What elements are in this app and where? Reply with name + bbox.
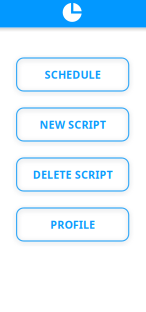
staticText: PROFILE bbox=[50, 217, 95, 232]
staticText: NEW SCRIPT bbox=[39, 117, 106, 132]
staticText: DELETE SCRIPT bbox=[33, 167, 112, 182]
staticText: SCHEDULE bbox=[45, 67, 101, 82]
button[interactable]: DELETE SCRIPT bbox=[17, 158, 129, 191]
button[interactable]: NEW SCRIPT bbox=[17, 108, 129, 141]
button[interactable]: PROFILE bbox=[17, 208, 129, 241]
button[interactable]: SCHEDULE bbox=[17, 58, 129, 91]
